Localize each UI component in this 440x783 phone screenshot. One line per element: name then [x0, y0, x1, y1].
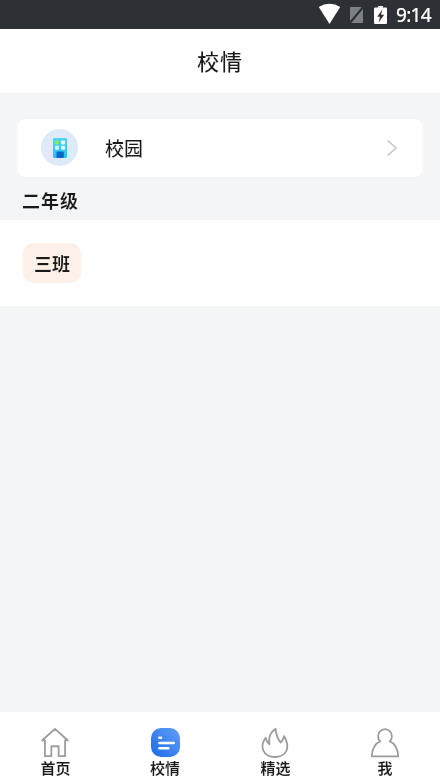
staticText: 三班	[34, 250, 70, 276]
button[interactable]: 三班	[23, 243, 81, 283]
button[interactable]: 校园	[17, 119, 423, 177]
other: Featured	[261, 728, 289, 757]
staticText: 二年级	[22, 187, 79, 213]
other: Home	[41, 728, 69, 757]
button[interactable]: Profile	[330, 712, 440, 783]
button[interactable]: Home	[0, 712, 110, 783]
staticText: 校情	[197, 44, 244, 76]
staticText: 校情	[150, 757, 181, 779]
staticText: 9:14	[396, 2, 431, 28]
staticText: 校园	[105, 134, 144, 162]
staticText: 我	[377, 757, 393, 779]
staticText: 精选	[260, 757, 291, 779]
staticText: 首页	[40, 757, 71, 779]
other: Profile	[371, 728, 399, 757]
button[interactable]: Featured	[220, 712, 330, 783]
button[interactable]: 校情	[110, 712, 220, 783]
